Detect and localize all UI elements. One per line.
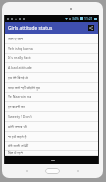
button[interactable]: जान ए जान	[5, 34, 98, 44]
button[interactable]: ना हमें कहते है	[5, 132, 98, 142]
staticText: हर बाउनी का	[8, 104, 25, 109]
button[interactable]: मेरी वाली अच्छी	[5, 142, 98, 151]
staticText: It's really fact:	[8, 55, 32, 60]
button[interactable]: वादा करो नहीं छोड़ोगे तुम	[5, 83, 98, 93]
button[interactable]: हम तेरे बिगड़े से	[5, 73, 98, 83]
button[interactable]: Share	[88, 25, 94, 31]
staticText: Ye Nazroin na	[8, 94, 32, 99]
button[interactable]: It's really fact:	[5, 54, 98, 63]
staticText: मेरी वाली अच्छी	[8, 143, 29, 148]
button[interactable]: Ye Nazroin na	[5, 93, 98, 102]
button[interactable]: सॉरी जनाब भी	[5, 122, 98, 132]
button[interactable]: Sweety ! Don't	[5, 112, 98, 122]
button[interactable]: दिल में रहने	[5, 151, 98, 156]
staticText: वादा करो नहीं छोड़ोगे तुम	[8, 85, 41, 90]
button[interactable]: A bad attitude	[5, 63, 98, 73]
button[interactable]: हर बाउनी का	[5, 102, 98, 112]
staticText: Girls attitude status	[8, 25, 53, 32]
staticText: 34%	[72, 16, 79, 21]
button[interactable]: Yeh ishq karna	[5, 44, 98, 54]
staticText: 11:21	[84, 16, 93, 21]
staticText: A bad attitude	[8, 65, 32, 70]
staticText: Sweety ! Don't	[8, 114, 32, 119]
staticText: हम तेरे बिगड़े से	[8, 75, 28, 80]
staticText: सॉरी जनाब भी	[8, 124, 27, 129]
staticText: दिल में रहने	[8, 150, 23, 155]
staticText: Yeh ishq karna	[8, 46, 33, 51]
staticText: जान ए जान	[8, 36, 24, 41]
staticText: ना हमें कहते है	[8, 134, 27, 139]
